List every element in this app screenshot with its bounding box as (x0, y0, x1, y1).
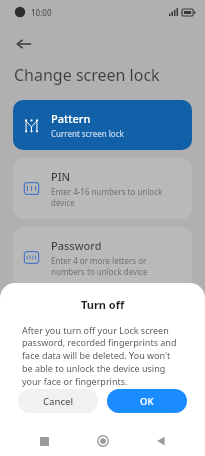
staticText: OK (140, 395, 154, 408)
staticText: Enter 4-16 numbers to unlock device (51, 186, 182, 208)
staticText: Turn off (81, 297, 125, 312)
button[interactable]: Back (8, 28, 40, 60)
button[interactable]: Recent apps (29, 426, 59, 456)
staticText: Password (51, 238, 102, 253)
button[interactable]: OK (107, 389, 187, 413)
button[interactable]: PIN (13, 158, 192, 219)
button[interactable]: Pattern (13, 100, 192, 150)
staticText: PIN (51, 169, 71, 184)
staticText: After you turn off your Lock screen pass… (22, 324, 183, 388)
staticText: 10:00 (31, 7, 52, 18)
button[interactable]: Home (88, 426, 118, 456)
staticText: Change screen lock (14, 64, 160, 86)
staticText: Pattern (51, 111, 91, 126)
staticText: Cancel (43, 395, 74, 408)
staticText: Enter 4 or more letters or numbers to un… (51, 255, 182, 277)
staticText: Current screen lock (51, 128, 124, 139)
button[interactable]: Back (146, 426, 176, 456)
button[interactable]: Password (13, 227, 192, 288)
button[interactable]: Cancel (18, 389, 98, 413)
